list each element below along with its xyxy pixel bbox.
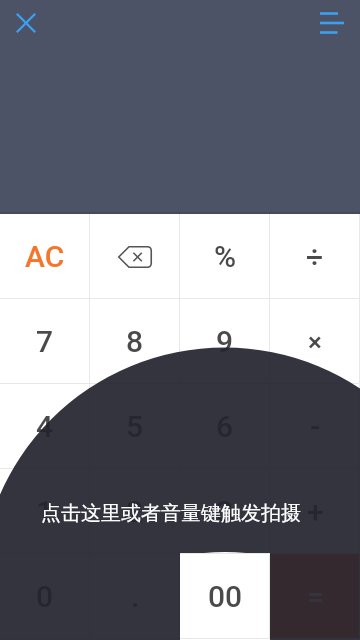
staticText: 00 <box>208 579 243 614</box>
button[interactable]: + <box>270 469 360 554</box>
button[interactable]: % <box>180 214 270 299</box>
button[interactable]: 5 <box>90 384 180 469</box>
staticText: % <box>214 239 237 274</box>
button[interactable]: 7 <box>0 299 90 384</box>
staticText: 6 <box>216 409 234 444</box>
staticText: 2 <box>126 494 144 529</box>
button[interactable]: × <box>270 299 360 384</box>
button[interactable]: 00 <box>180 554 270 639</box>
staticText: 3 <box>216 494 234 529</box>
staticText: AC <box>25 239 65 274</box>
button[interactable]: Close <box>3 0 48 45</box>
staticText: ÷ <box>306 239 324 274</box>
button[interactable]: 8 <box>90 299 180 384</box>
staticText: 点击这里或者音量键触发拍摄 <box>0 501 351 526</box>
button[interactable]: 2 <box>90 469 180 554</box>
button[interactable]: Backspace <box>90 214 180 299</box>
staticText: 9 <box>216 324 234 359</box>
staticText: 4 <box>36 409 54 444</box>
button[interactable]: - <box>270 384 360 469</box>
button[interactable]: 9 <box>180 299 270 384</box>
button[interactable]: 1 <box>0 469 90 554</box>
button[interactable]: AC <box>0 214 90 299</box>
staticText: 8 <box>126 324 144 359</box>
staticText: = <box>307 579 324 614</box>
button[interactable]: 4 <box>0 384 90 469</box>
button[interactable]: 3 <box>180 469 270 554</box>
button[interactable]: ÷ <box>270 214 360 299</box>
staticText: 1 <box>36 494 54 529</box>
button[interactable]: Menu <box>309 0 354 45</box>
staticText: × <box>308 327 322 357</box>
staticText: + <box>307 494 324 529</box>
staticText: 7 <box>36 324 54 359</box>
staticText: 0 <box>36 579 54 614</box>
staticText: 5 <box>126 409 144 444</box>
